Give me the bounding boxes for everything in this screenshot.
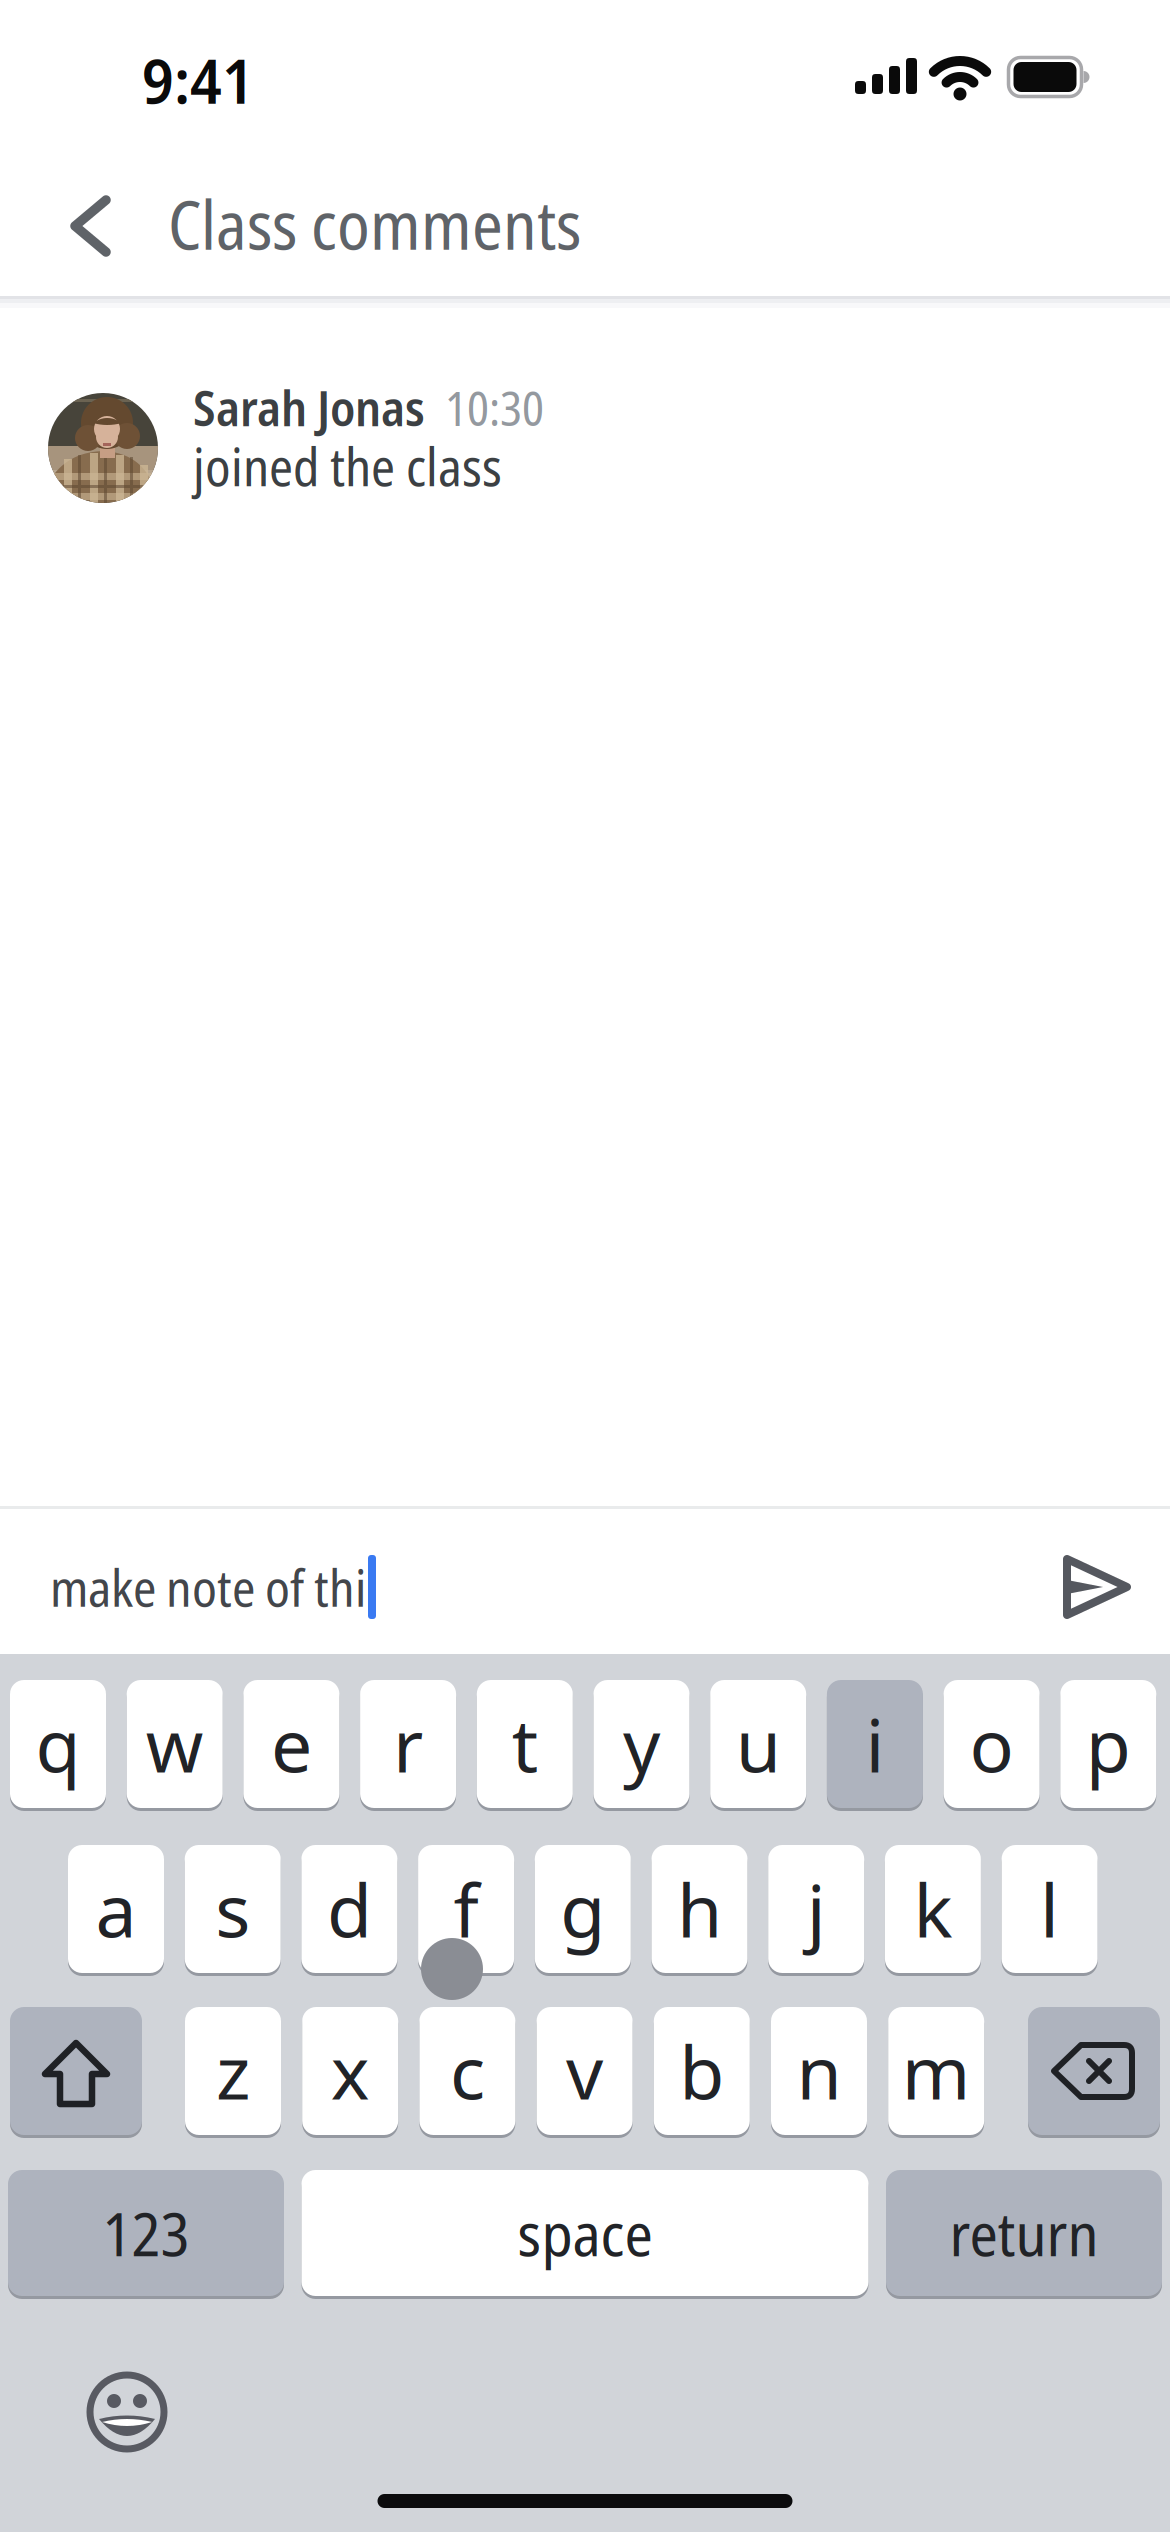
button[interactable]: space: [301, 2168, 868, 2298]
button[interactable]: x: [302, 2005, 398, 2137]
staticText: o: [970, 1694, 1014, 1794]
staticText: 10:30: [445, 376, 544, 440]
staticText: b: [679, 2021, 724, 2121]
staticText: j: [807, 1859, 826, 1959]
staticText: c: [450, 2021, 485, 2121]
button[interactable]: [44, 182, 132, 270]
button[interactable]: s: [185, 1843, 281, 1975]
button[interactable]: [82, 2367, 172, 2457]
staticText: m: [902, 2021, 971, 2121]
button[interactable]: w: [127, 1678, 223, 1810]
button[interactable]: d: [301, 1843, 397, 1975]
button[interactable]: f: [418, 1843, 514, 1975]
staticText: make note of thi: [50, 1552, 366, 1621]
button[interactable]: c: [419, 2005, 515, 2137]
button[interactable]: u: [710, 1678, 806, 1810]
staticText: t: [512, 1694, 538, 1794]
staticText: a: [95, 1859, 136, 1959]
button[interactable]: t: [477, 1678, 573, 1810]
button[interactable]: y: [593, 1678, 689, 1810]
button[interactable]: b: [654, 2005, 750, 2137]
staticText: i: [865, 1694, 884, 1794]
staticText: k: [913, 1859, 952, 1959]
staticText: x: [331, 2021, 370, 2121]
staticText: p: [1086, 1694, 1131, 1794]
staticText: 123: [102, 2192, 189, 2274]
button[interactable]: [1028, 2005, 1160, 2137]
button[interactable]: j: [768, 1843, 864, 1975]
staticText: e: [271, 1694, 312, 1794]
button[interactable]: g: [535, 1843, 631, 1975]
staticText: d: [327, 1859, 372, 1959]
button[interactable]: e: [243, 1678, 339, 1810]
button[interactable]: p: [1060, 1678, 1156, 1810]
button[interactable]: k: [885, 1843, 981, 1975]
staticText: return: [949, 2192, 1098, 2274]
button[interactable]: z: [185, 2005, 281, 2137]
button[interactable]: make note of thi: [50, 1517, 1030, 1657]
button[interactable]: i: [827, 1678, 923, 1810]
staticText: u: [736, 1694, 781, 1794]
button[interactable]: o: [944, 1678, 1040, 1810]
staticText: f: [454, 1859, 479, 1959]
button[interactable]: v: [537, 2005, 633, 2137]
button[interactable]: 123: [8, 2168, 284, 2298]
staticText: z: [216, 2021, 250, 2121]
staticText: Sarah Jonas: [193, 373, 425, 441]
staticText: space: [517, 2192, 652, 2274]
button[interactable]: h: [651, 1843, 747, 1975]
button[interactable]: [1051, 1542, 1141, 1632]
staticText: g: [560, 1859, 605, 1959]
staticText: Class comments: [168, 179, 581, 269]
button[interactable]: n: [771, 2005, 867, 2137]
button[interactable]: l: [1002, 1843, 1098, 1975]
staticText: s: [215, 1859, 250, 1959]
staticText: h: [677, 1859, 722, 1959]
staticText: w: [146, 1694, 204, 1794]
staticText: r: [393, 1694, 423, 1794]
staticText: l: [1040, 1859, 1059, 1959]
staticText: 9:41: [142, 38, 254, 122]
button[interactable]: return: [886, 2168, 1162, 2298]
staticText: y: [623, 1694, 660, 1794]
staticText: n: [796, 2021, 841, 2121]
staticText: v: [566, 2021, 603, 2121]
button[interactable]: a: [68, 1843, 164, 1975]
staticText: q: [35, 1694, 80, 1794]
button[interactable]: q: [10, 1678, 106, 1810]
button[interactable]: m: [888, 2005, 984, 2137]
button[interactable]: [10, 2005, 142, 2137]
staticText: joined the class: [193, 431, 502, 501]
button[interactable]: r: [360, 1678, 456, 1810]
